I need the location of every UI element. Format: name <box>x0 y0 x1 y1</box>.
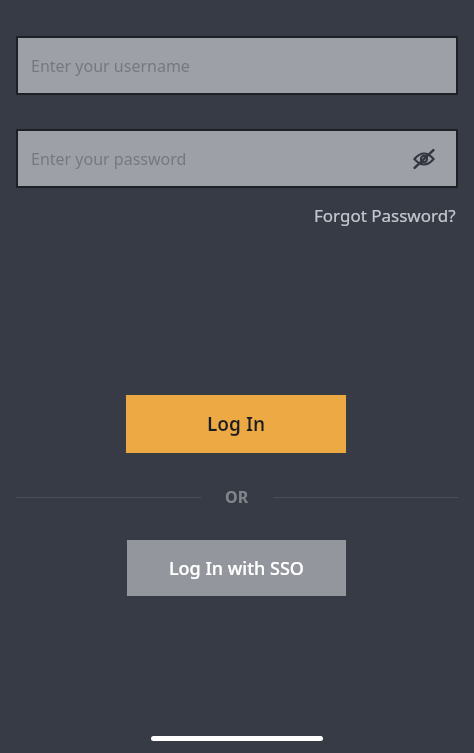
button[interactable]: Enter your username <box>16 36 458 95</box>
staticText: Log In <box>207 411 266 437</box>
staticText: OR <box>225 486 249 508</box>
button[interactable]: Log In <box>126 395 346 453</box>
button[interactable]: Show password <box>410 145 438 173</box>
button[interactable]: Log In with SSO <box>127 540 346 596</box>
staticText: Enter your password <box>31 148 187 170</box>
staticText: Forgot Password? <box>314 204 456 227</box>
button[interactable]: Enter your password <box>16 129 458 188</box>
staticText: Enter your username <box>31 55 190 77</box>
button[interactable]: Forgot Password? <box>314 200 474 231</box>
staticText: Log In with SSO <box>169 556 304 581</box>
